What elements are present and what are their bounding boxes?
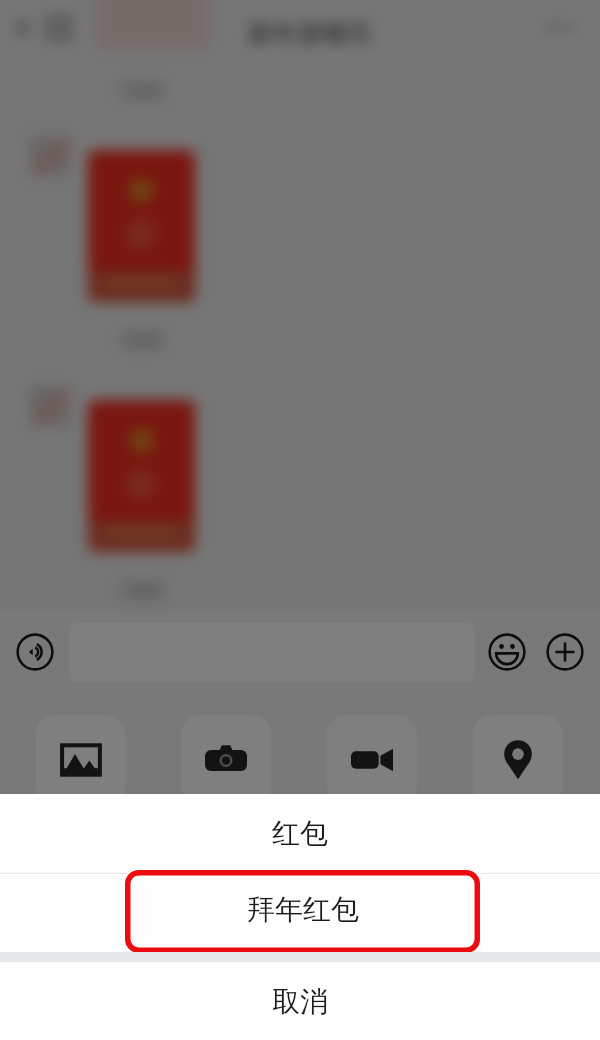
button[interactable]: Video call [327,715,417,805]
button[interactable]: Emoji [488,633,526,671]
staticText: 新年群聊天 [248,18,373,49]
staticText: 拜年红包 [247,892,359,927]
button[interactable]: 拜年红包 [125,870,480,953]
button[interactable]: 红包 [0,794,600,873]
staticText: 红包 [272,816,328,851]
button[interactable]: Back [10,14,38,42]
button[interactable]: 取消 [0,962,600,1040]
button[interactable]: Location [473,715,563,805]
button[interactable]: Voice message [16,633,54,671]
staticText: 取消 [272,984,328,1019]
button[interactable]: Camera [181,715,271,805]
button[interactable]: More [546,633,584,671]
button[interactable]: Photos [36,715,126,805]
